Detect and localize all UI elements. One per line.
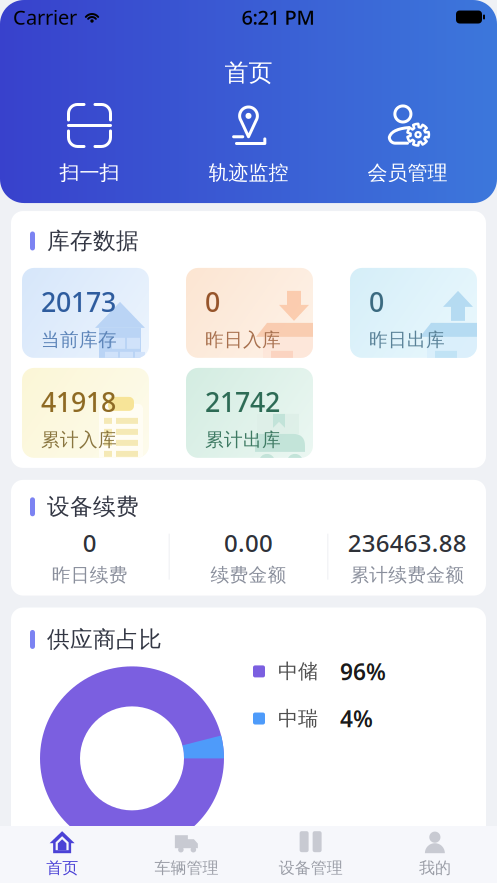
button[interactable]: 设备管理 (248, 823, 373, 883)
staticText: 中储 (278, 659, 318, 684)
staticText: 96% (340, 656, 386, 686)
staticText: 库存数据 (47, 227, 139, 255)
staticText: 累计入库 (41, 428, 117, 451)
staticText: Carrier (13, 4, 77, 30)
staticText: 设备续费 (47, 493, 139, 521)
button[interactable]: 轨迹监控 (169, 101, 328, 185)
button[interactable]: 扫一扫 (10, 101, 169, 185)
staticText: 我的 (419, 858, 451, 878)
staticText: 中瑞 (278, 706, 318, 731)
staticText: 昨日入库 (205, 328, 281, 351)
staticText: 0.00 (224, 527, 273, 559)
staticText: 轨迹监控 (208, 160, 288, 185)
staticText: 0 (83, 527, 97, 559)
staticText: 首页 (224, 58, 272, 87)
staticText: 20173 (41, 284, 116, 319)
staticText: 0 (369, 284, 384, 319)
staticText: 昨日出库 (369, 328, 445, 351)
staticText: 车辆管理 (154, 858, 218, 878)
button[interactable]: 车辆管理 (124, 823, 248, 883)
staticText: 0 (205, 284, 220, 319)
button[interactable]: 会员管理 (328, 101, 487, 185)
staticText: 续费金额 (210, 564, 286, 586)
staticText: 236463.88 (348, 527, 467, 559)
staticText: 累计续费金额 (350, 564, 464, 586)
button[interactable]: 我的 (373, 823, 497, 883)
staticText: 设备管理 (279, 858, 343, 878)
staticText: 当前库存 (41, 328, 117, 351)
staticText: 累计出库 (205, 428, 281, 451)
staticText: 6:21 PM (241, 4, 314, 30)
staticText: 21742 (205, 384, 280, 419)
staticText: 供应商占比 (47, 625, 162, 653)
staticText: 首页 (46, 858, 78, 878)
staticText: 41918 (41, 384, 116, 419)
staticText: 会员管理 (367, 160, 447, 185)
staticText: 4% (340, 703, 373, 734)
button[interactable]: 首页 (0, 823, 124, 883)
staticText: 昨日续费 (52, 564, 128, 586)
staticText: 扫一扫 (59, 160, 119, 185)
